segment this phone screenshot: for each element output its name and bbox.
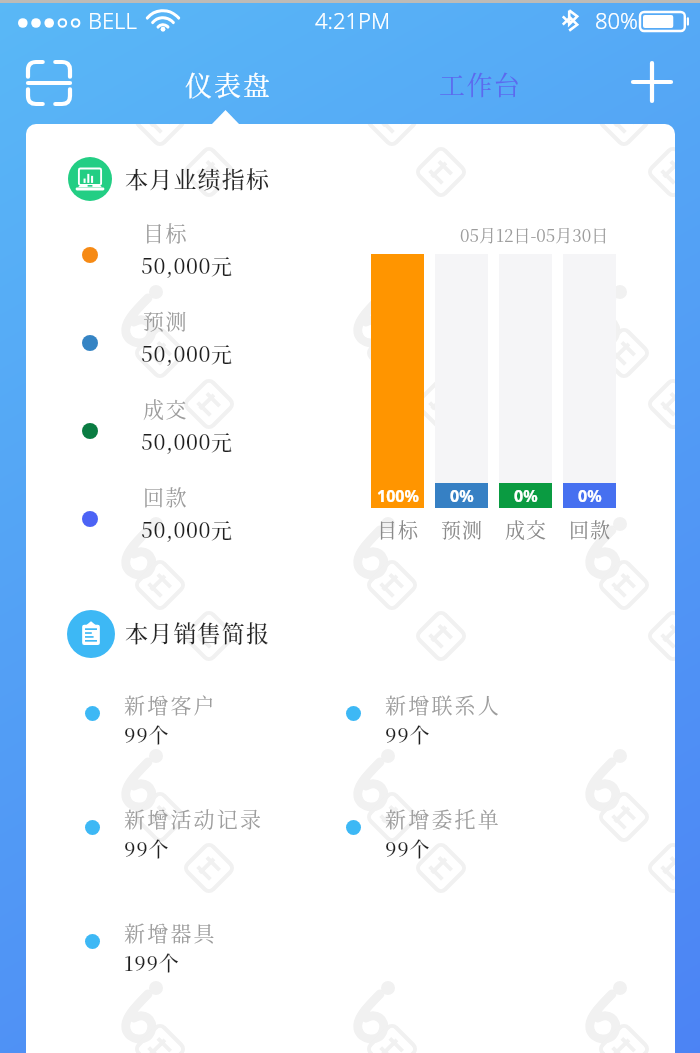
button[interactable]: 新增器具 [74,913,326,991]
button[interactable]: Add [621,51,683,113]
button[interactable]: 0% [563,254,616,544]
button[interactable]: 新增委托单 [335,799,587,877]
staticText: 工作台 [439,65,522,102]
staticText: 本月销售简报 [125,616,271,649]
button[interactable]: 100% [371,254,424,544]
button[interactable]: 0% [435,254,488,544]
staticText: 80% [595,5,638,35]
staticText: 99个 [385,720,431,749]
staticText: 成交 [143,393,189,423]
staticText: 50,000元 [141,426,233,456]
staticText: 本月业绩指标 [125,162,271,195]
staticText: 预测 [441,515,483,544]
button[interactable]: 目标 [74,213,304,297]
staticText: 99个 [124,834,170,863]
staticText: 成交 [505,515,547,544]
staticText: 0% [450,485,474,507]
button[interactable]: 新增联系人 [335,685,587,763]
button[interactable]: 新增活动记录 [74,799,326,877]
staticText: 50,000元 [141,338,233,368]
staticText: 新增器具 [124,917,217,947]
staticText: 99个 [385,834,431,863]
button[interactable]: 仪表盘 [175,54,281,114]
button[interactable]: 新增客户 [74,685,326,763]
staticText: 05月12日-05月30日 [460,222,609,246]
staticText: 回款 [143,481,189,511]
staticText: 99个 [124,720,170,749]
staticText: 4:21PM [315,5,391,35]
staticText: 100% [377,485,419,507]
button[interactable]: 工作台 [427,55,533,111]
staticText: 50,000元 [141,514,233,544]
staticText: 0% [514,485,538,507]
button[interactable]: Scan [11,49,81,119]
staticText: 50,000元 [141,250,233,280]
staticText: 新增委托单 [385,803,501,833]
staticText: BELL [88,5,137,35]
button[interactable]: 0% [499,254,552,544]
staticText: 目标 [377,515,419,544]
button[interactable]: Sales brief [67,610,115,658]
button[interactable]: 成交 [74,389,304,473]
staticText: 0% [578,485,602,507]
button[interactable]: Performance [68,157,112,201]
staticText: 回款 [569,515,611,544]
staticText: 预测 [143,305,189,335]
staticText: 目标 [143,217,189,247]
staticText: 新增联系人 [385,689,501,719]
button[interactable]: 预测 [74,301,304,385]
staticText: 新增客户 [124,689,217,719]
staticText: 新增活动记录 [124,803,264,833]
staticText: 仪表盘 [185,65,272,104]
button[interactable]: 回款 [74,477,304,561]
staticText: 199个 [124,948,180,977]
